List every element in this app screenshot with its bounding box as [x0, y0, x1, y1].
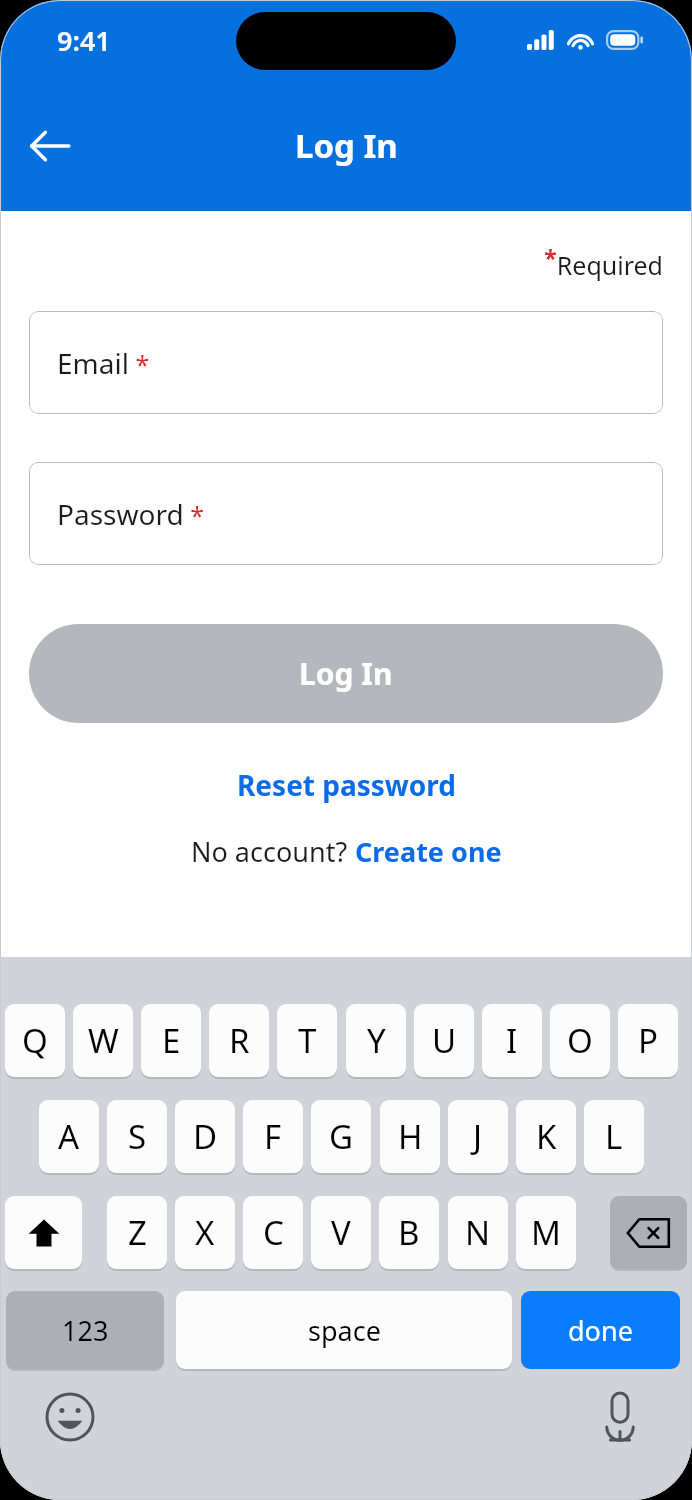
- button[interactable]: B: [379, 1196, 439, 1269]
- staticText: N: [465, 1210, 491, 1255]
- staticText: Log In: [299, 653, 393, 694]
- button[interactable]: J: [448, 1100, 508, 1173]
- button[interactable]: W: [73, 1004, 133, 1077]
- staticText: Log In: [295, 123, 398, 168]
- button[interactable]: P: [618, 1004, 678, 1077]
- staticText: H: [398, 1114, 423, 1159]
- staticText: Email *: [57, 344, 150, 382]
- staticText: Password *: [57, 495, 204, 533]
- staticText: O: [567, 1018, 593, 1063]
- button[interactable]: K: [516, 1100, 576, 1173]
- button[interactable]: V: [311, 1196, 371, 1269]
- button[interactable]: I: [482, 1004, 542, 1077]
- staticText: Create one: [355, 833, 502, 870]
- staticText: J: [473, 1114, 483, 1159]
- staticText: *Required: [544, 242, 663, 282]
- button[interactable]: G: [311, 1100, 371, 1173]
- button[interactable]: M: [516, 1196, 576, 1269]
- button[interactable]: Q: [5, 1004, 65, 1077]
- button[interactable]: L: [584, 1100, 644, 1173]
- staticText: W: [88, 1018, 119, 1063]
- button[interactable]: Z: [107, 1196, 167, 1269]
- staticText: R: [229, 1018, 250, 1063]
- staticText: E: [162, 1018, 181, 1063]
- staticText: 9:41: [57, 22, 111, 59]
- button[interactable]: Back: [22, 118, 78, 174]
- button[interactable]: [5, 1196, 82, 1269]
- button[interactable]: Backspace: [610, 1196, 687, 1269]
- staticText: V: [331, 1210, 351, 1255]
- staticText: T: [298, 1018, 317, 1063]
- button[interactable]: F: [243, 1100, 303, 1173]
- staticText: C: [263, 1210, 284, 1255]
- staticText: 123: [62, 1312, 109, 1349]
- button[interactable]: X: [175, 1196, 235, 1269]
- staticText: P: [638, 1018, 658, 1063]
- button[interactable]: Y: [346, 1004, 406, 1077]
- button[interactable]: E: [141, 1004, 201, 1077]
- staticText: No account?: [191, 833, 355, 870]
- button[interactable]: R: [209, 1004, 269, 1077]
- staticText: I: [506, 1018, 518, 1063]
- button[interactable]: H: [380, 1100, 440, 1173]
- staticText: Y: [367, 1018, 386, 1063]
- button[interactable]: T: [277, 1004, 337, 1077]
- button[interactable]: S: [107, 1100, 167, 1173]
- staticText: Q: [22, 1018, 48, 1063]
- staticText: F: [264, 1114, 282, 1159]
- button[interactable]: C: [243, 1196, 303, 1269]
- button[interactable]: N: [448, 1196, 508, 1269]
- staticText: G: [329, 1114, 354, 1159]
- button[interactable]: Password *: [29, 462, 663, 565]
- button[interactable]: Log In: [29, 624, 663, 723]
- button[interactable]: O: [550, 1004, 610, 1077]
- button[interactable]: 123: [6, 1291, 164, 1369]
- button[interactable]: U: [414, 1004, 474, 1077]
- staticText: done: [568, 1312, 633, 1349]
- staticText: S: [128, 1114, 147, 1159]
- button[interactable]: Emoji: [38, 1385, 102, 1449]
- staticText: L: [605, 1114, 623, 1159]
- staticText: Reset password: [237, 766, 456, 804]
- button[interactable]: space: [176, 1291, 512, 1369]
- staticText: K: [536, 1114, 557, 1159]
- staticText: space: [308, 1312, 381, 1349]
- button[interactable]: A: [39, 1100, 99, 1173]
- button[interactable]: Email *: [29, 311, 663, 414]
- button[interactable]: Create one: [355, 833, 502, 870]
- button[interactable]: Dictate: [588, 1385, 652, 1449]
- staticText: Z: [128, 1210, 147, 1255]
- staticText: X: [195, 1210, 215, 1255]
- staticText: D: [193, 1114, 218, 1159]
- staticText: A: [58, 1114, 80, 1159]
- staticText: U: [432, 1018, 457, 1063]
- staticText: M: [531, 1210, 561, 1255]
- button[interactable]: D: [175, 1100, 235, 1173]
- button[interactable]: Reset password: [223, 759, 470, 811]
- staticText: B: [398, 1210, 420, 1255]
- button[interactable]: done: [521, 1291, 680, 1369]
